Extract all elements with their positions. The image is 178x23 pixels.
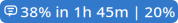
staticText: 38% in 1h 45m | 20% bbox=[20, 1, 175, 22]
button[interactable]: Charging status: 38% in 1 hour 45 minute… bbox=[0, 0, 178, 23]
